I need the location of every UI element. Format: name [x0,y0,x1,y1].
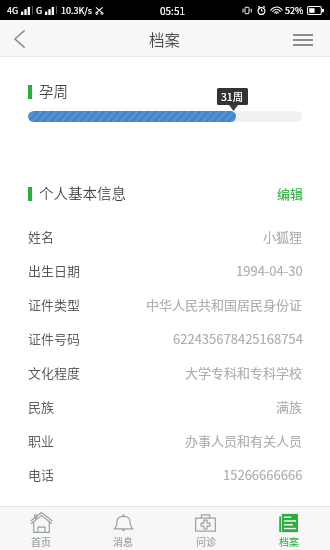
staticText: 文化程度 [28,363,81,382]
button[interactable]: 职业 [0,423,330,457]
button[interactable]: 问诊 [164,507,247,550]
button[interactable]: Back [0,20,38,57]
staticText: 证件号码 [28,329,81,348]
staticText: 办事人员和有关人员 [185,431,303,450]
staticText: 4G [7,4,19,17]
staticText: 档案 [149,28,181,50]
staticText: 622435678425168754 [173,329,303,348]
button[interactable]: 姓名 [0,219,330,253]
staticText: 满族 [276,397,303,416]
staticText: G [36,4,43,17]
button[interactable]: 民族 [0,389,330,423]
button[interactable]: 编辑 [277,182,304,206]
button[interactable]: 消息 [82,507,164,550]
staticText: 1994-04-30 [236,261,303,280]
staticText: 档案 [279,534,299,548]
staticText: 证件类型 [28,295,81,314]
button[interactable]: Menu [275,20,330,57]
staticText: 职业 [28,431,55,450]
staticText: 05:51 [160,3,185,17]
staticText: 大学专科和专科学校 [185,363,303,382]
staticText: 31周 [221,89,244,104]
staticText: 52% [285,4,304,17]
button[interactable]: 电话 [0,457,330,491]
button[interactable]: 出生日期 [0,253,330,287]
staticText: 10.3K/s [61,4,93,17]
button[interactable]: 证件号码 [0,321,330,355]
staticText: 出生日期 [28,261,81,280]
staticText: 姓名 [28,227,55,246]
staticText: 问诊 [196,534,216,548]
staticText: 首页 [31,534,51,548]
staticText: 编辑 [277,184,304,203]
staticText: 中华人民共和国居民身份证 [146,295,303,314]
staticText: 消息 [113,534,133,548]
staticText: 民族 [28,397,55,416]
button[interactable]: 档案 [247,507,330,550]
staticText: 个人基本信息 [39,182,126,203]
staticText: 电话 [28,465,55,484]
staticText: 孕周 [39,80,68,101]
staticText: 15266666666 [223,465,303,484]
button[interactable]: 文化程度 [0,355,330,389]
staticText: 小狐狸 [263,227,303,246]
button[interactable]: 首页 [0,507,82,550]
button[interactable]: 证件类型 [0,287,330,321]
